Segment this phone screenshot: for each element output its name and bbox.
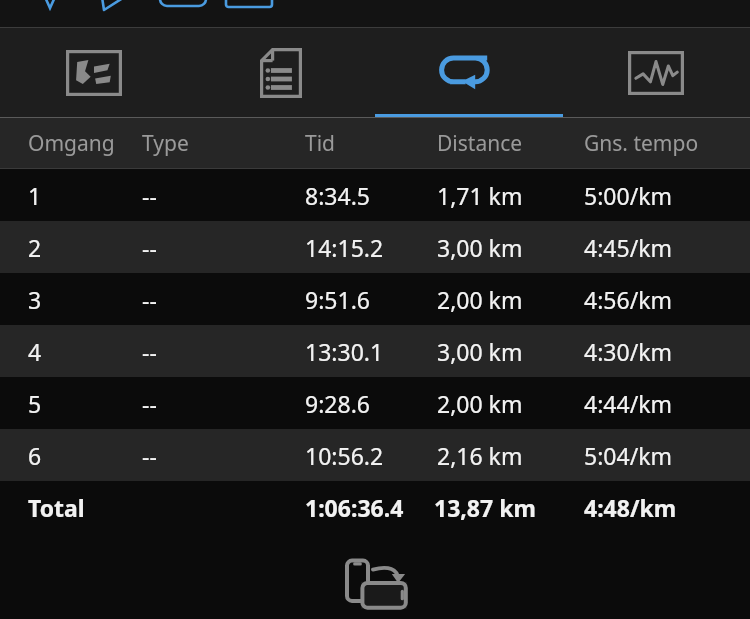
staticText: 5:04/km	[584, 440, 672, 471]
staticText: 5:00/km	[584, 180, 672, 211]
staticText: --	[142, 336, 157, 367]
staticText: 4:45/km	[584, 232, 672, 263]
button[interactable]: 6	[0, 429, 750, 481]
staticText: Tid	[305, 129, 336, 158]
staticText: 1:06:36.4	[305, 492, 404, 523]
button[interactable]: 1	[0, 169, 750, 221]
staticText: 3,00 km	[437, 232, 523, 263]
staticText: --	[142, 440, 157, 471]
staticText: --	[142, 388, 157, 419]
staticText: 13:30.1	[305, 336, 384, 367]
staticText: 9:51.6	[305, 284, 370, 315]
button[interactable]: 3	[0, 273, 750, 325]
staticText: 6	[28, 440, 42, 471]
staticText: 10:56.2	[305, 440, 384, 471]
staticText: Omgang	[28, 129, 115, 158]
button[interactable]: Map	[0, 28, 187, 118]
staticText: 5	[28, 388, 42, 419]
staticText: Total	[28, 492, 85, 523]
staticText: 3	[28, 284, 42, 315]
button[interactable]: Graphs	[562, 28, 750, 118]
button[interactable]: 5	[0, 377, 750, 429]
staticText: Distance	[437, 129, 523, 158]
staticText: 1	[28, 180, 42, 211]
button[interactable]: Total	[0, 481, 750, 533]
staticText: 4:30/km	[584, 336, 672, 367]
button[interactable]: Laps	[374, 28, 562, 118]
staticText: 2,00 km	[437, 388, 523, 419]
staticText: --	[142, 232, 157, 263]
staticText: --	[142, 284, 157, 315]
staticText: 4:48/km	[584, 492, 677, 523]
staticText: 9:28.6	[305, 388, 370, 419]
staticText: 2,00 km	[437, 284, 523, 315]
staticText: 14:15.2	[305, 232, 384, 263]
staticText: 2	[28, 232, 42, 263]
button[interactable]: 2	[0, 221, 750, 273]
button[interactable]: Rotate screen	[336, 547, 414, 619]
staticText: 2,16 km	[437, 440, 523, 471]
staticText: Type	[142, 129, 189, 158]
staticText: --	[142, 180, 157, 211]
button[interactable]: 4	[0, 325, 750, 377]
staticText: 13,87 km	[434, 492, 536, 523]
button[interactable]: Details	[187, 28, 374, 118]
staticText: 4:44/km	[584, 388, 672, 419]
staticText: 1,71 km	[437, 180, 523, 211]
staticText: 4:56/km	[584, 284, 672, 315]
staticText: 4	[28, 336, 42, 367]
staticText: Gns. tempo	[584, 129, 699, 158]
staticText: 3,00 km	[437, 336, 523, 367]
staticText: 8:34.5	[305, 180, 370, 211]
